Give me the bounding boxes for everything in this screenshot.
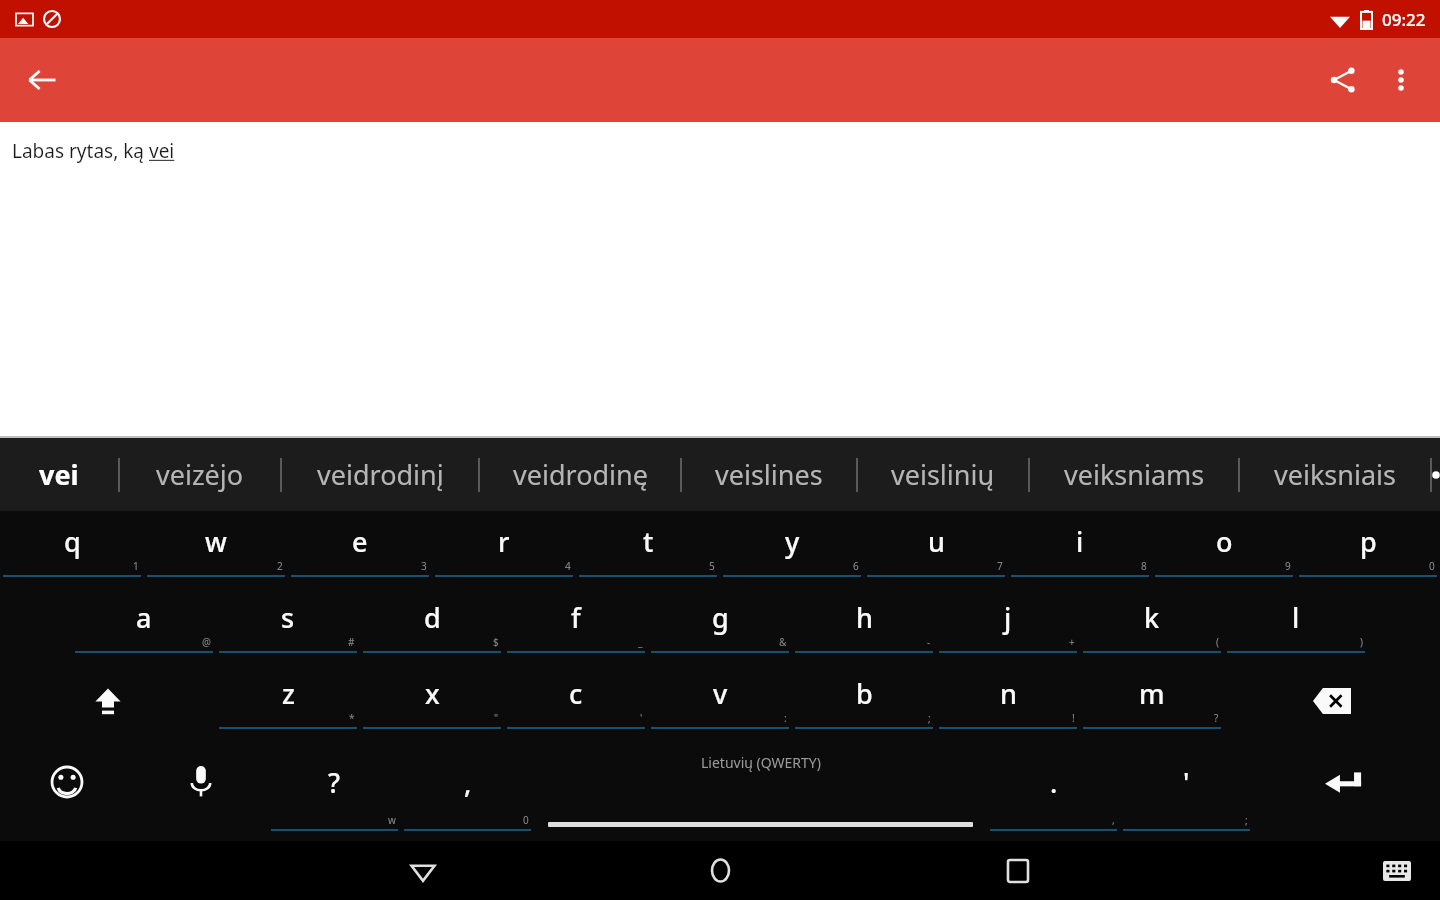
staticText: v	[713, 675, 728, 712]
button[interactable]: p	[1296, 511, 1440, 587]
button[interactable]: Emoji	[0, 739, 134, 841]
button[interactable]: w	[144, 511, 288, 587]
button[interactable]: Shift	[0, 663, 216, 739]
staticText: veiksniais	[1274, 456, 1396, 493]
button[interactable]: ?	[268, 739, 401, 841]
button[interactable]: Lietuvių (QWERTY)	[534, 739, 987, 841]
button[interactable]: a	[72, 587, 216, 663]
staticText: Labas rytas, ką	[12, 138, 149, 164]
button[interactable]: ,	[401, 739, 534, 841]
button[interactable]: Home	[571, 841, 869, 900]
button[interactable]: e	[288, 511, 432, 587]
button[interactable]: l	[1224, 587, 1368, 663]
staticText: h	[856, 599, 873, 636]
staticText: vei	[39, 456, 79, 493]
staticText: "	[494, 711, 499, 725]
button[interactable]: Back	[14, 52, 70, 108]
button[interactable]: Share	[1314, 51, 1372, 109]
button[interactable]: veizėjo	[120, 438, 280, 511]
button[interactable]: b	[792, 663, 936, 739]
button[interactable]: More options	[1372, 51, 1430, 109]
staticText: ;	[928, 711, 931, 725]
staticText: veidrodinę	[513, 456, 648, 493]
button[interactable]: q	[0, 511, 144, 587]
button[interactable]: t	[576, 511, 720, 587]
button[interactable]: Enter	[1253, 739, 1440, 841]
staticText: 3	[421, 559, 427, 573]
staticText: 0	[523, 813, 529, 827]
staticText: :	[784, 711, 787, 725]
button[interactable]: veislinių	[858, 438, 1028, 511]
staticText: m	[1139, 675, 1165, 712]
button[interactable]: s	[216, 587, 360, 663]
staticText: y	[785, 523, 800, 560]
staticText: +	[1069, 635, 1075, 649]
staticText: ?	[328, 764, 341, 801]
button[interactable]: Back	[274, 841, 571, 900]
button[interactable]: x	[360, 663, 504, 739]
button[interactable]: g	[648, 587, 792, 663]
button[interactable]: z	[216, 663, 360, 739]
staticText: 8	[1141, 559, 1147, 573]
button[interactable]: i	[1008, 511, 1152, 587]
button[interactable]: d	[360, 587, 504, 663]
staticText: f	[571, 599, 581, 636]
button[interactable]: c	[504, 663, 648, 739]
staticText: ,	[1112, 813, 1115, 827]
button[interactable]: Recent apps	[869, 841, 1167, 900]
button[interactable]: veidrodinį	[282, 438, 478, 511]
staticText: -	[927, 635, 931, 649]
staticText: s	[281, 599, 295, 636]
staticText: veiksniams	[1064, 456, 1205, 493]
button[interactable]: vei	[0, 438, 118, 511]
staticText: Lietuvių (QWERTY)	[701, 753, 821, 772]
button[interactable]: y	[720, 511, 864, 587]
staticText: $	[493, 635, 499, 649]
staticText: 2	[277, 559, 283, 573]
staticText: ;	[1245, 813, 1248, 827]
button[interactable]: veiksniams	[1030, 438, 1238, 511]
button[interactable]: Switch keyboard	[1374, 848, 1420, 894]
button[interactable]: .	[987, 739, 1120, 841]
staticText: vei	[149, 138, 175, 164]
staticText: q	[64, 523, 81, 560]
button[interactable]: o	[1152, 511, 1296, 587]
staticText: i	[1076, 523, 1084, 560]
button[interactable]: v	[648, 663, 792, 739]
button[interactable]: r	[432, 511, 576, 587]
staticText: j	[1004, 599, 1012, 636]
staticText: x	[425, 675, 440, 712]
staticText: p	[1360, 523, 1377, 560]
staticText: k	[1144, 599, 1160, 636]
button[interactable]: j	[936, 587, 1080, 663]
button[interactable]: m	[1080, 663, 1224, 739]
staticText: veislines	[715, 456, 823, 493]
staticText: '	[1183, 764, 1190, 801]
staticText: a	[136, 599, 152, 636]
staticText: 1	[133, 559, 139, 573]
staticText: 5	[709, 559, 715, 573]
staticText: c	[569, 675, 583, 712]
staticText: 4	[565, 559, 571, 573]
staticText: r	[498, 523, 510, 560]
staticText: veizėjo	[156, 456, 244, 493]
staticText: t	[643, 523, 654, 560]
staticText: ,	[464, 764, 472, 801]
staticText: n	[1000, 675, 1017, 712]
button[interactable]: n	[936, 663, 1080, 739]
button[interactable]: veidrodinę	[480, 438, 680, 511]
button[interactable]: f	[504, 587, 648, 663]
staticText: d	[424, 599, 441, 636]
button[interactable]: veiksniais	[1240, 438, 1430, 511]
button[interactable]: '	[1120, 739, 1253, 841]
button[interactable]: k	[1080, 587, 1224, 663]
button[interactable]: Voice input	[134, 739, 268, 841]
staticText: @	[202, 635, 211, 649]
button[interactable]: Backspace	[1224, 663, 1440, 739]
button[interactable]: veislines	[682, 438, 856, 511]
button[interactable]: u	[864, 511, 1008, 587]
button[interactable]: Delete suggestion	[1432, 438, 1440, 511]
staticText: 6	[853, 559, 859, 573]
staticText: &	[779, 635, 787, 649]
button[interactable]: h	[792, 587, 936, 663]
